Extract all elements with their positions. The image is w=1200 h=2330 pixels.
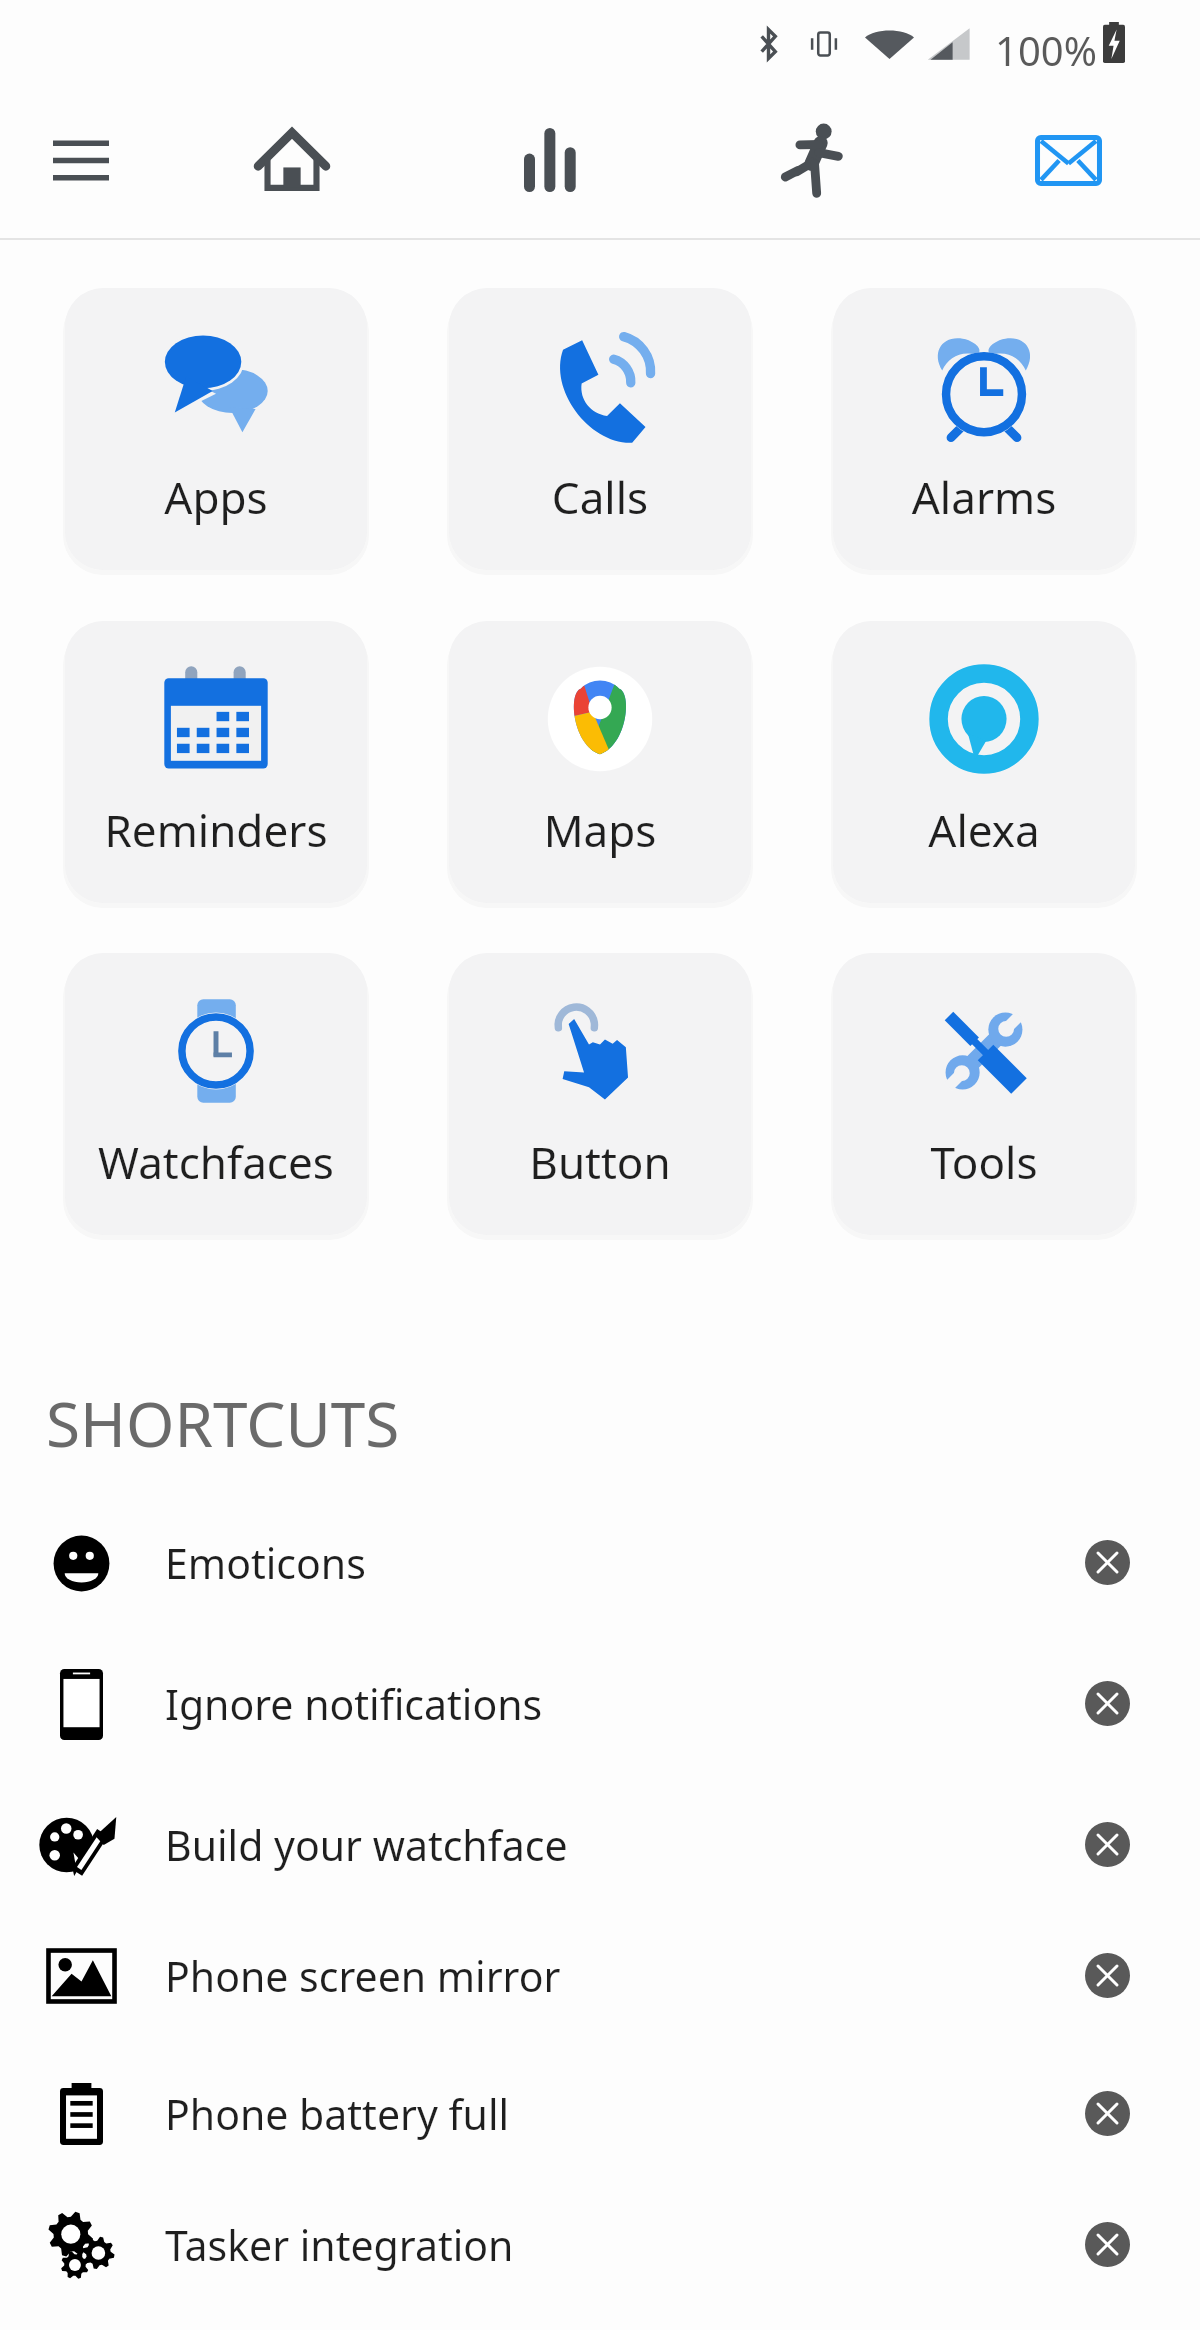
- button[interactable]: Emoticons: [0, 1493, 1200, 1633]
- button[interactable]: Build your watchface: [0, 1775, 1200, 1915]
- button[interactable]: Alexa: [833, 621, 1135, 903]
- staticText: Ignore notifications: [165, 1676, 543, 1732]
- staticText: Build your watchface: [165, 1817, 568, 1873]
- button[interactable]: Phone battery full: [0, 2044, 1200, 2184]
- staticText: Alexa: [833, 800, 1135, 860]
- staticText: Phone screen mirror: [165, 1948, 561, 2004]
- button[interactable]: Tools: [833, 953, 1135, 1235]
- button[interactable]: Maps: [449, 621, 751, 903]
- button[interactable]: Tasker integration: [0, 2175, 1200, 2315]
- button[interactable]: Apps: [65, 288, 367, 570]
- button[interactable]: Remove Build your watchface: [1085, 1822, 1130, 1867]
- button[interactable]: Stats: [489, 90, 613, 230]
- staticText: Apps: [65, 467, 367, 527]
- button[interactable]: Activity: [749, 90, 873, 230]
- button[interactable]: Ignore notifications: [0, 1634, 1200, 1774]
- button[interactable]: Remove Emoticons: [1085, 1540, 1130, 1585]
- button[interactable]: Remove Phone battery full: [1085, 2091, 1130, 2136]
- button[interactable]: Button: [449, 953, 751, 1235]
- button[interactable]: Messages: [1006, 90, 1130, 230]
- staticText: Calls: [449, 467, 751, 527]
- button[interactable]: Watchfaces: [65, 953, 367, 1235]
- button[interactable]: Remove Tasker integration: [1085, 2222, 1130, 2267]
- button[interactable]: Calls: [449, 288, 751, 570]
- staticText: Tasker integration: [165, 2217, 514, 2273]
- button[interactable]: Home: [230, 90, 354, 230]
- button[interactable]: Remove Ignore notifications: [1085, 1681, 1130, 1726]
- staticText: Tools: [833, 1132, 1135, 1192]
- staticText: Button: [449, 1132, 751, 1192]
- button[interactable]: Remove Phone screen mirror: [1085, 1953, 1130, 1998]
- button[interactable]: Menu: [19, 90, 143, 230]
- staticText: Watchfaces: [65, 1132, 367, 1192]
- staticText: Reminders: [65, 800, 367, 860]
- button[interactable]: Phone screen mirror: [0, 1906, 1200, 2046]
- staticText: 100%: [995, 23, 1097, 77]
- staticText: Phone battery full: [165, 2086, 510, 2142]
- staticText: Alarms: [833, 467, 1135, 527]
- staticText: Maps: [449, 800, 751, 860]
- button[interactable]: Reminders: [65, 621, 367, 903]
- staticText: Emoticons: [165, 1535, 366, 1591]
- button[interactable]: Alarms: [833, 288, 1135, 570]
- staticText: SHORTCUTS: [46, 1381, 400, 1465]
